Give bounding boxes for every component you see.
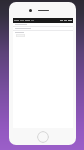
button[interactable]: Submit bbox=[16, 34, 25, 37]
button[interactable]: Home bbox=[37, 131, 49, 143]
